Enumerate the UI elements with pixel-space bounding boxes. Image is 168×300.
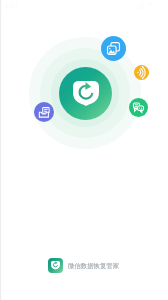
staticText: 微信数据恢复管家 xyxy=(68,262,120,270)
button[interactable]: Chats xyxy=(129,98,148,117)
button[interactable]: Scan xyxy=(59,67,112,120)
button[interactable]: Audio xyxy=(134,65,149,80)
button[interactable]: Files xyxy=(34,102,54,122)
button[interactable]: Photos xyxy=(101,36,126,61)
button[interactable]: 微信数据恢复管家 xyxy=(48,258,120,273)
